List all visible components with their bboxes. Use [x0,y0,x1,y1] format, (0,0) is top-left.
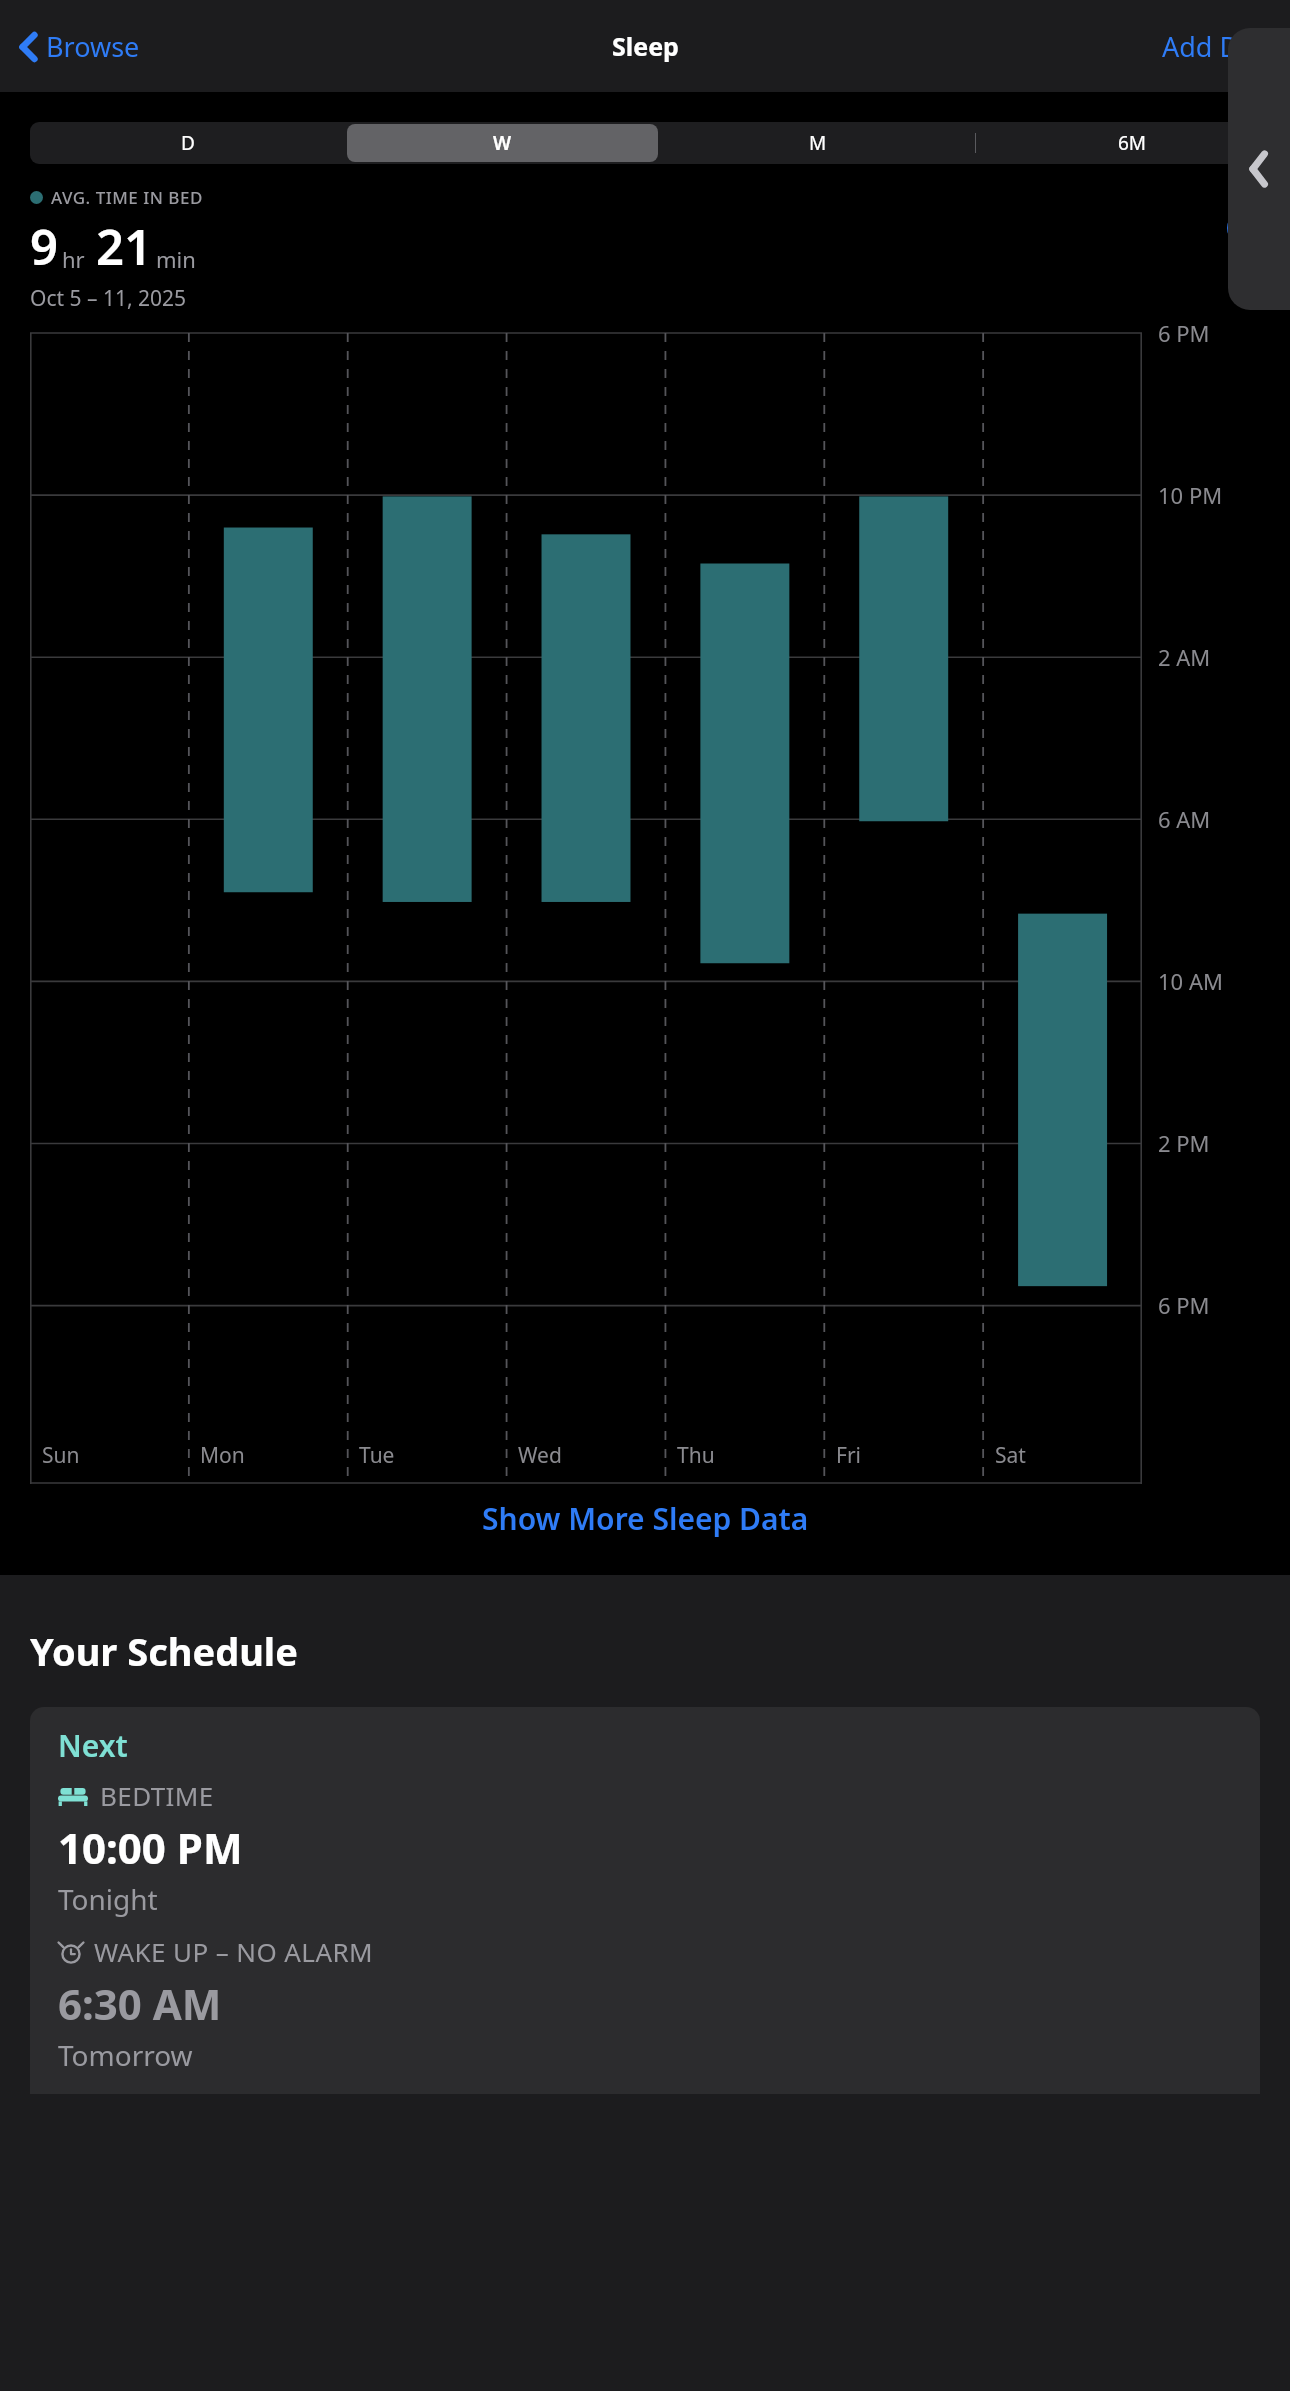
button[interactable]: Browse [12,20,148,73]
staticText: 9 [30,213,59,280]
staticText: Thu [677,1441,715,1470]
staticText: WAKE UP – NO ALARM [94,1934,373,1969]
staticText: AVG. TIME IN BED [51,186,203,209]
staticText: 2 AM [1158,642,1211,672]
staticText: 10 AM [1158,966,1223,996]
staticText: Wed [518,1441,562,1470]
staticText: Add Data [1162,28,1280,65]
staticText: BEDTIME [100,1778,214,1813]
staticText: M [809,130,827,156]
staticText: 6 PM [1158,318,1210,348]
staticText: 21 [96,213,153,280]
button[interactable]: Show More Sleep Data [0,1484,1290,1553]
staticText: min [156,244,196,274]
staticText: 6M [1118,130,1147,156]
button[interactable]: Add Data [1152,20,1290,73]
staticText: Next [58,1725,128,1766]
staticText: 6:30 AM [58,1975,222,2032]
staticText: Oct 5 – 11, 2025 [30,284,187,313]
staticText: Browse [46,28,140,65]
staticText: Mon [200,1441,245,1470]
button[interactable]: Next [30,1707,1260,2094]
staticText: Sat [995,1441,1026,1470]
button[interactable]: 6M [975,122,1290,164]
button[interactable]: M [660,122,975,164]
staticText: 10:00 PM [58,1819,243,1876]
button[interactable]: D [30,122,345,164]
staticText: D [181,130,195,156]
staticText: Tonight [58,1880,158,1918]
staticText: 6 AM [1158,804,1211,834]
staticText: Sun [42,1441,80,1470]
staticText: Show More Sleep Data [482,1498,809,1539]
button[interactable]: W [345,122,660,164]
staticText: Sleep [612,29,679,63]
button[interactable]: Information [1224,206,1268,250]
staticText: Tue [359,1441,395,1470]
staticText: Fri [836,1441,861,1470]
staticText: 6 PM [1158,1290,1210,1320]
staticText: Your Schedule [30,1625,298,1677]
staticText: W [493,130,512,156]
button[interactable]: Back [1228,28,1290,310]
staticText: hr [62,244,85,274]
staticText: 2 PM [1158,1128,1210,1158]
staticText: Tomorrow [58,2036,193,2074]
staticText: 10 PM [1158,480,1223,510]
